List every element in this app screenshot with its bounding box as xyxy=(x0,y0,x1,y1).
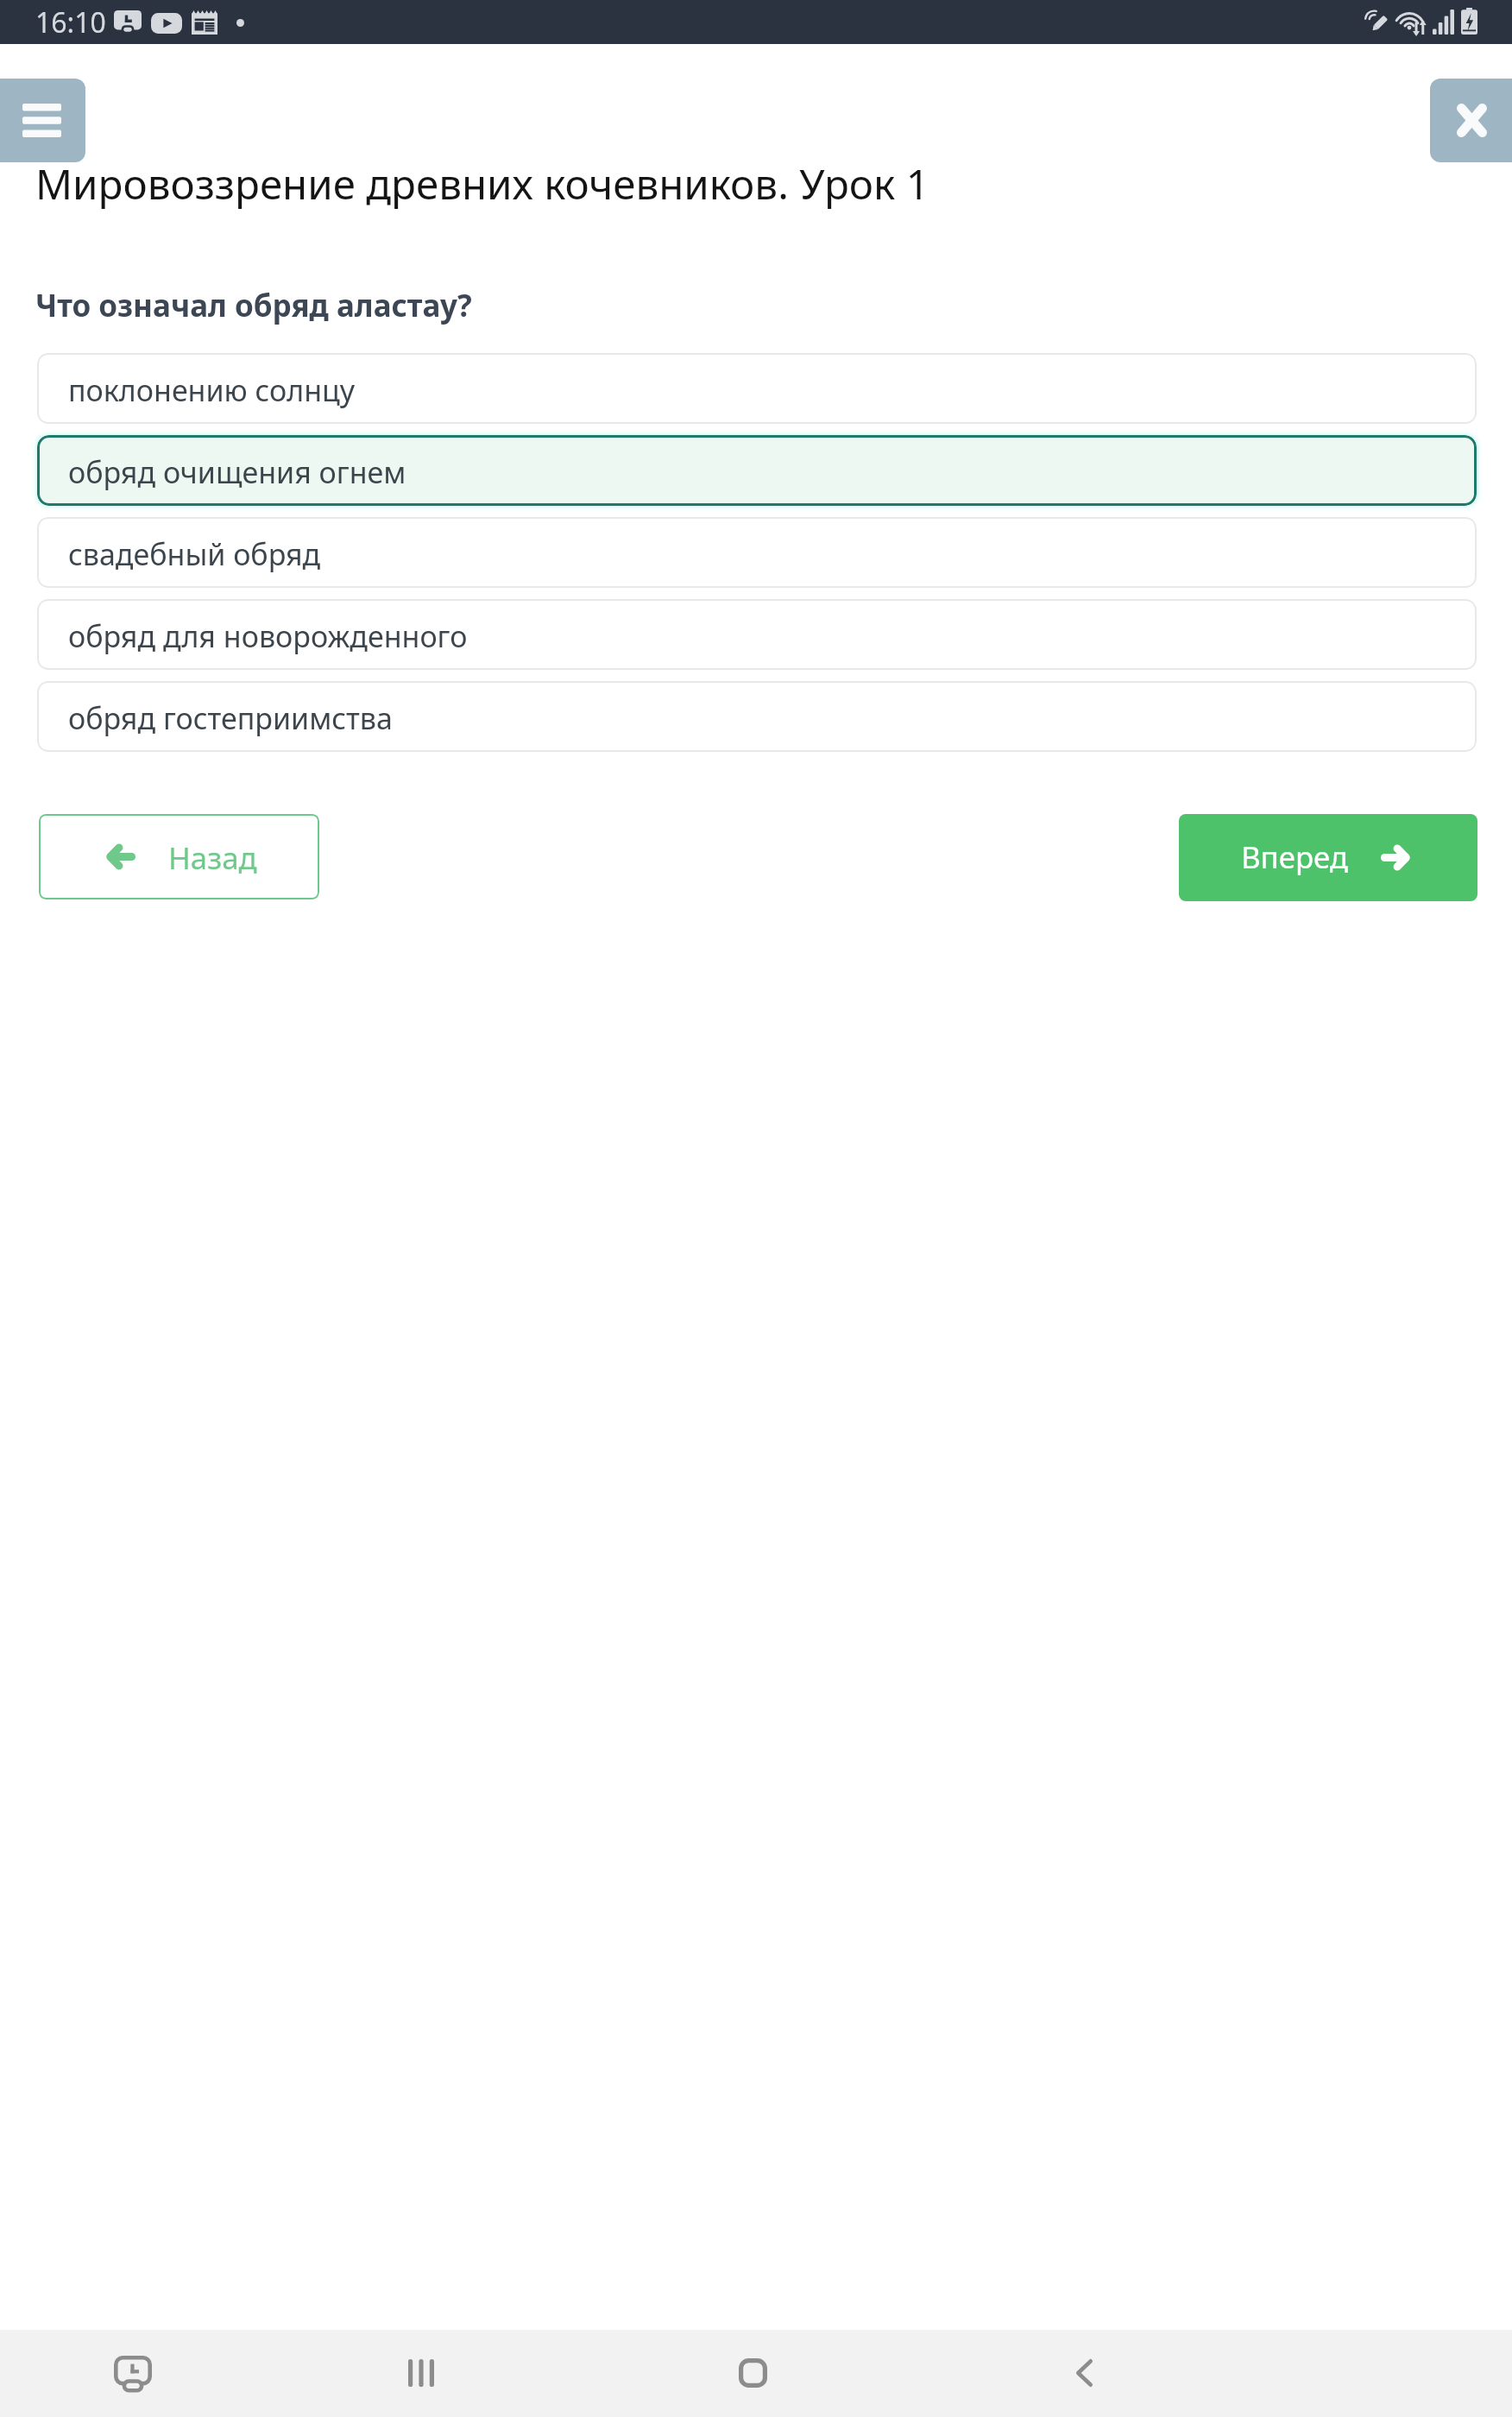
button[interactable]: обряд для новорожденного xyxy=(37,599,1477,670)
staticText: Что означал обряд аластау? xyxy=(35,285,472,326)
button[interactable]: обряд очищения огнем xyxy=(37,435,1477,506)
button[interactable]: Вперед xyxy=(1179,814,1477,901)
staticText: поклонению солнцу xyxy=(68,370,356,410)
staticText: свадебный обряд xyxy=(68,534,321,574)
staticText: 16:10 xyxy=(35,3,106,41)
staticText: обряд для новорожденного xyxy=(68,616,468,656)
staticText: Мировоззрение древних кочевников. Урок 1 xyxy=(35,155,929,211)
button[interactable]: Menu xyxy=(0,79,85,162)
button[interactable]: свадебный обряд xyxy=(37,517,1477,588)
staticText: обряд очищения огнем xyxy=(68,452,406,492)
button[interactable]: обряд гостеприимства xyxy=(37,681,1477,752)
button[interactable]: Home xyxy=(701,2338,804,2408)
button[interactable]: Change keyboard xyxy=(81,2338,185,2408)
button[interactable]: Back xyxy=(1032,2338,1136,2408)
staticText: Вперед xyxy=(1241,836,1348,877)
button[interactable]: Назад xyxy=(39,814,319,899)
button[interactable]: Close xyxy=(1430,79,1512,162)
button[interactable]: Recent apps xyxy=(369,2338,473,2408)
button[interactable]: поклонению солнцу xyxy=(37,353,1477,424)
staticText: обряд гостеприимства xyxy=(68,698,393,738)
staticText: Назад xyxy=(168,837,257,878)
